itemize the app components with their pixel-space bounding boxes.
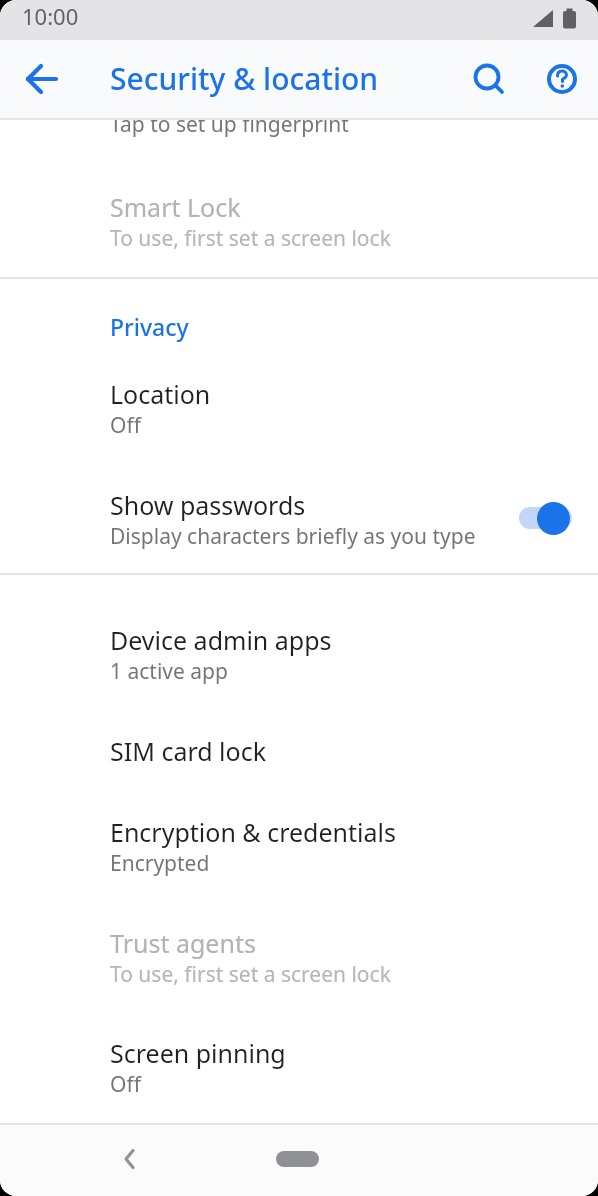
button[interactable]: Show passwords (0, 465, 598, 576)
staticText: Show passwords (110, 488, 306, 522)
button[interactable]: Trust agents (0, 903, 598, 1014)
staticText: Display characters briefly as you type (110, 522, 476, 551)
staticText: Location (110, 377, 211, 411)
staticText: Off (110, 1070, 141, 1099)
staticText: SIM card lock (110, 734, 267, 768)
button[interactable] (538, 55, 586, 103)
staticText: Screen pinning (110, 1036, 286, 1070)
staticText: To use, first set a screen lock (110, 224, 391, 253)
button[interactable]: Location (0, 354, 598, 465)
staticText: Encrypted (110, 849, 210, 878)
staticText: To use, first set a screen lock (110, 960, 391, 989)
button[interactable]: Smart Lock (0, 167, 598, 278)
staticText: Privacy (110, 311, 189, 342)
staticText: Tap to set up fingerprint (110, 110, 349, 139)
button[interactable] (106, 1135, 154, 1183)
staticText: 1 active app (110, 657, 228, 686)
button[interactable]: Encryption & credentials (0, 792, 598, 903)
staticText: 10:00 (22, 1, 79, 31)
staticText: Off (110, 411, 141, 440)
button[interactable]: SIM card lock (0, 711, 598, 792)
staticText: Device admin apps (110, 623, 332, 657)
button[interactable]: Fingerprint (0, 53, 598, 164)
staticText: Encryption & credentials (110, 815, 396, 849)
button[interactable] (276, 1151, 319, 1167)
staticText: Fingerprint (110, 76, 242, 110)
staticText: Trust agents (110, 926, 256, 960)
button[interactable]: Screen pinning (0, 1013, 598, 1124)
staticText: Smart Lock (110, 190, 241, 224)
button[interactable] (18, 55, 66, 103)
staticText: Security & location (110, 58, 379, 99)
button[interactable] (464, 55, 512, 103)
button[interactable]: Device admin apps (0, 600, 598, 711)
